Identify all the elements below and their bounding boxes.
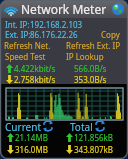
staticText: 192.168.2.103 — [30, 19, 83, 30]
button[interactable]: Refresh Net. — [4, 40, 51, 51]
staticText: Network Meter — [21, 1, 107, 17]
staticText: 566.0B/s — [74, 63, 107, 74]
button[interactable]: Current — [5, 120, 53, 132]
button[interactable]: Copy — [101, 29, 120, 40]
button[interactable]: Refresh Ext. IP — [66, 40, 121, 51]
button[interactable]: Speed Test — [5, 51, 46, 62]
staticText: 353.0B/s — [74, 74, 107, 85]
button[interactable]: Total — [70, 120, 105, 132]
staticText: 343.807kB — [74, 144, 114, 155]
staticText: Current — [5, 120, 41, 132]
button[interactable]: IP Lookup — [66, 51, 104, 62]
staticText: Ext. IP: — [5, 29, 31, 40]
staticText: Int. IP: — [5, 19, 30, 30]
staticText: 2.758kbit/s — [14, 74, 56, 85]
other: Reset counter — [43, 121, 53, 131]
staticText: 4.422kbit/s — [14, 63, 56, 74]
staticText: 316.0MB — [15, 144, 48, 155]
other: Reset counter — [95, 121, 105, 131]
button[interactable]: Open website — [112, 3, 124, 15]
staticText: Total — [70, 120, 93, 132]
staticText: 86.176.22.26 — [30, 29, 78, 40]
staticText: 21.14MB — [15, 132, 48, 143]
staticText: 121.856kB — [74, 132, 114, 143]
